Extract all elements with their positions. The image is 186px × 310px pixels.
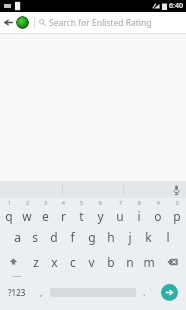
button[interactable]: v [82,249,101,274]
staticText: z [33,254,39,270]
staticText: t [79,208,84,224]
button[interactable]: s [26,225,44,249]
staticText: x [51,254,58,270]
staticText: m [143,254,155,270]
button[interactable]: Search for Enlisted Rating [39,12,186,33]
button[interactable]: Voice input [166,181,186,198]
staticText: q [5,208,13,224]
button[interactable]: , [33,274,50,310]
staticText: 8 [138,200,141,207]
button[interactable]: n [120,249,139,274]
button[interactable]: f [63,225,82,249]
staticText: i [137,208,141,224]
button[interactable]: Delete [158,249,186,274]
button[interactable]: 5 [72,199,91,225]
button[interactable]: a [8,225,26,249]
staticText: 9 [157,200,160,207]
button[interactable]: 2 [18,199,36,225]
button[interactable]: k [139,225,158,249]
staticText: 6 [99,200,102,207]
staticText: 4 [62,200,65,207]
staticText: p [173,208,181,224]
staticText: r [61,208,66,224]
button[interactable]: l [158,225,177,249]
button[interactable]: h [101,225,120,249]
staticText: y [97,208,104,224]
staticText: k [145,229,152,245]
button[interactable]: z [27,249,45,274]
staticText: , [40,286,43,298]
button[interactable]: . [136,274,153,310]
staticText: c [70,254,76,270]
staticText: 5 [80,200,83,207]
button[interactable]: c [63,249,82,274]
button[interactable]: 1 [0,199,18,225]
button[interactable]: m [139,249,158,274]
staticText: 7 [119,200,122,207]
staticText: 6:40 [169,1,183,11]
staticText: u [116,208,124,224]
staticText: 0 [176,200,179,207]
button[interactable]: j [120,225,139,249]
staticText: ?123 [8,287,26,298]
staticText: v [88,254,95,270]
staticText: 3 [44,200,47,207]
staticText: Search for Enlisted Rating [49,17,152,29]
button[interactable]: ?123 [0,274,33,310]
button[interactable]: d [44,225,63,249]
staticText: 1 [8,200,11,207]
staticText: a [14,229,21,245]
staticText: f [70,229,75,245]
button[interactable]: 4 [54,199,72,225]
button[interactable]: g [82,225,101,249]
button[interactable]: 8 [129,199,148,225]
staticText: l [166,229,170,245]
button[interactable]: 9 [148,199,167,225]
staticText: o [154,208,162,224]
button[interactable]: 7 [110,199,129,225]
button[interactable]: 3 [36,199,54,225]
staticText: n [126,254,134,270]
staticText: b [107,254,115,270]
staticText: d [50,229,58,245]
staticText: s [32,229,38,245]
button[interactable]: x [45,249,63,274]
button[interactable]: 6 [91,199,110,225]
staticText: j [128,229,132,245]
staticText: 2 [26,200,29,207]
staticText: h [107,229,115,245]
button[interactable]: 0 [167,199,186,225]
button[interactable]: Search [161,284,178,301]
button[interactable]: App icon [16,16,29,29]
staticText: . [143,286,146,298]
button[interactable]: Shift [0,249,27,274]
button[interactable]: b [101,249,120,274]
staticText: g [88,229,96,245]
staticText: e [42,208,49,224]
button[interactable]: Navigate up [0,12,16,33]
staticText: w [22,208,32,224]
